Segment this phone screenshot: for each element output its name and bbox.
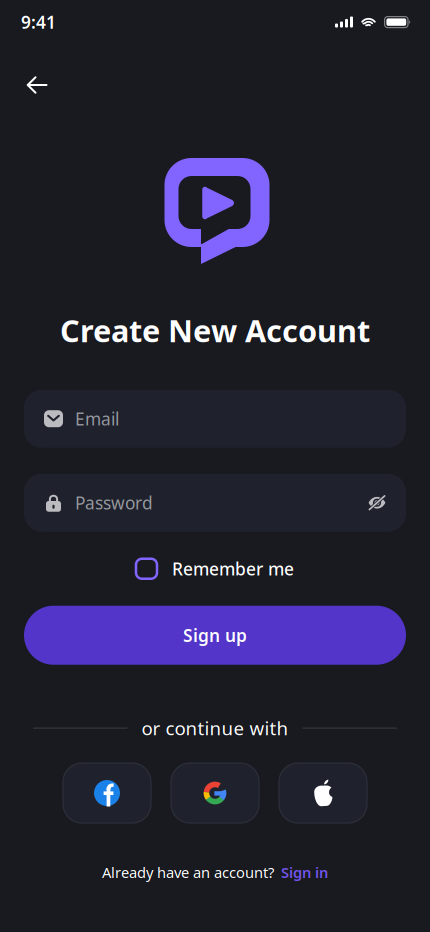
staticText: Sign in (281, 862, 328, 882)
staticText: Sign up (183, 624, 247, 647)
staticText: or continue with (141, 716, 288, 740)
staticText: Already have an account? (102, 862, 274, 882)
button[interactable]: Continue with Google (170, 762, 259, 823)
staticText: Remember me (172, 557, 294, 580)
button[interactable]: Sign in (281, 862, 328, 882)
staticText: 9:41 (21, 10, 56, 33)
button[interactable]: Sign up (24, 606, 406, 665)
staticText: Create New Account (60, 310, 370, 351)
button[interactable]: Show password (368, 495, 386, 511)
button[interactable]: Remember me (136, 549, 294, 589)
staticText: Password (75, 491, 153, 514)
button[interactable]: Continue with Apple (278, 762, 367, 823)
button[interactable]: Back (15, 58, 59, 102)
button[interactable]: Continue with Facebook (62, 762, 151, 823)
staticText: Email (75, 407, 119, 430)
